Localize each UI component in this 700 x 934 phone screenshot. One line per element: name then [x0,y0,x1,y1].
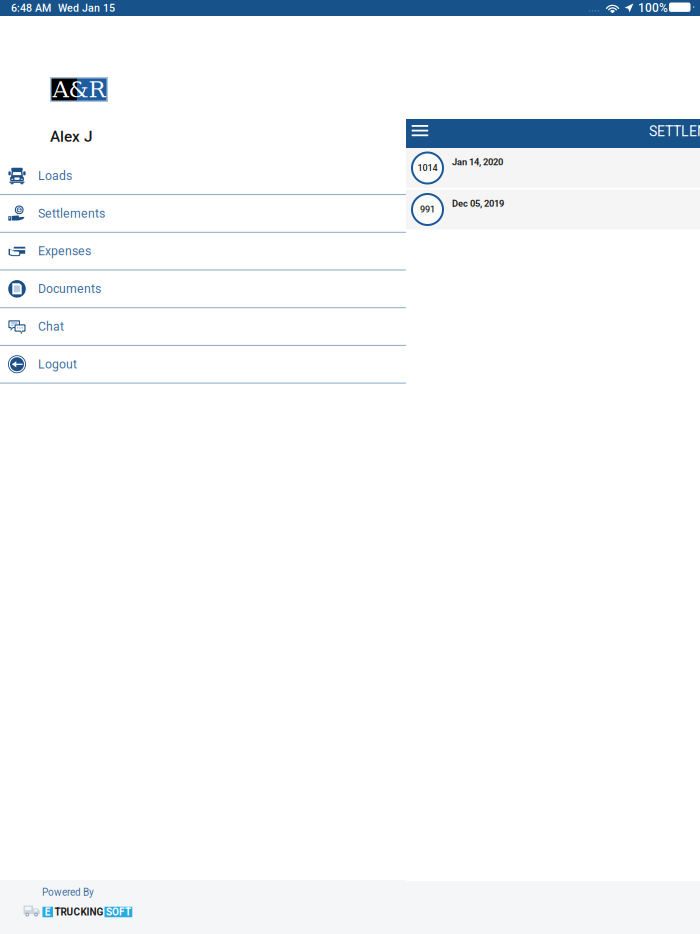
staticText: Settlements [38,206,105,221]
button[interactable]: Documents [0,270,406,308]
button[interactable]: Chat [0,308,406,346]
staticText: Logout [38,357,77,371]
button[interactable]: Expenses [0,233,406,270]
button[interactable]: Menu [406,119,440,148]
staticText: SOFT [106,906,131,918]
button[interactable]: 1014 [406,148,700,188]
staticText: 991 [420,204,435,215]
staticText: Powered By [42,886,94,898]
staticText: A&R [52,76,105,103]
staticText: 1014 [417,163,437,173]
staticText: 6:48 AM [11,2,51,14]
button[interactable]: Logout [0,346,406,384]
staticText: Loads [38,169,72,183]
staticText: TRUCKING [54,906,103,918]
staticText: Jan 14, 2020 [452,156,503,167]
button[interactable]: 991 [406,189,700,229]
staticText: Dec 05, 2019 [452,198,504,209]
staticText: Alex J [50,127,93,145]
staticText: SETTLEMENTS [649,123,700,140]
staticText: Chat [38,319,64,334]
staticText: Expenses [38,244,91,258]
staticText: Documents [38,282,101,296]
staticText: .... [588,2,600,14]
staticText: Wed Jan 15 [58,2,115,14]
button[interactable]: Settlements [0,195,406,233]
staticText: 100% [638,1,668,15]
button[interactable]: Loads [0,157,406,195]
staticText: E [45,906,51,918]
